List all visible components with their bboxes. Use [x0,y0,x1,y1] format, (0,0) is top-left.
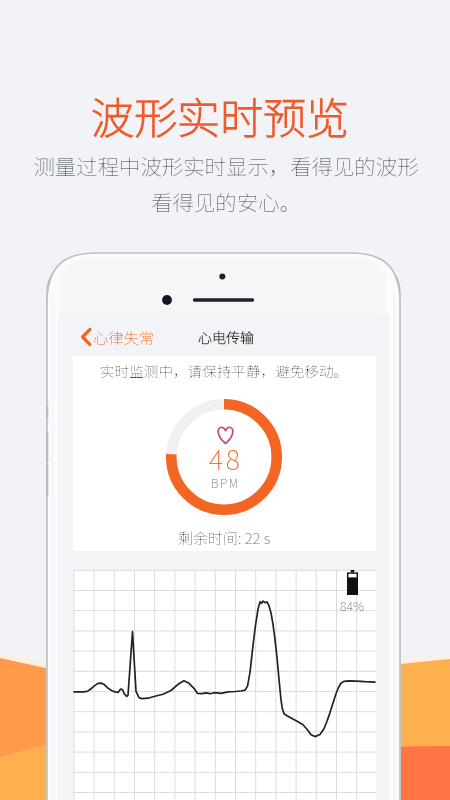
staticText: 心电传输 [198,327,254,347]
staticText: BPM [211,474,240,491]
staticText: 波形实时预览 [91,84,349,146]
staticText: 心律失常 [93,326,155,348]
button[interactable]: 心律失常 [58,320,165,354]
other: Phone earpiece [46,252,401,800]
staticText: 84% [340,596,365,614]
other: Battery 84 percent [347,570,358,595]
staticText: 剩余时间: 22 s [178,527,271,549]
staticText: 实时监测中，请保持平静，避免移动。 [100,360,349,381]
staticText: 测量过程中波形实时显示，看得见的波形 看得见的安心。 [33,150,419,217]
staticText: 48 [209,439,243,478]
